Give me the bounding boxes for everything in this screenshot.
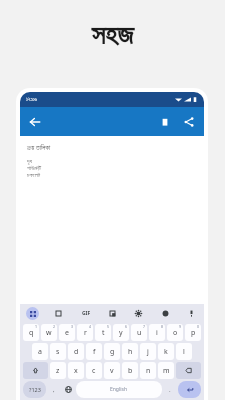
staticText: চকলেট: [27, 172, 41, 178]
button[interactable]: Delete: [152, 109, 178, 135]
button[interactable]: y: [113, 324, 129, 341]
staticText: e: [65, 328, 69, 338]
button[interactable]: Settings: [132, 307, 145, 320]
button[interactable]: Period: [163, 381, 177, 398]
button[interactable]: Share: [178, 109, 200, 135]
staticText: i: [156, 328, 158, 338]
button[interactable]: o: [167, 324, 183, 341]
staticText: সহজ: [91, 22, 134, 49]
staticText: s: [56, 347, 60, 357]
button[interactable]: s: [50, 343, 66, 360]
button[interactable]: r: [77, 324, 93, 341]
button[interactable]: a: [32, 343, 48, 360]
staticText: দুধ: [27, 158, 33, 164]
staticText: v: [110, 366, 114, 376]
button[interactable]: l: [176, 343, 192, 360]
staticText: l: [183, 347, 185, 357]
staticText: o: [173, 328, 178, 338]
staticText: z: [56, 366, 60, 376]
button[interactable]: f: [86, 343, 102, 360]
button[interactable]: GIF: [79, 307, 93, 320]
button[interactable]: u: [131, 324, 147, 341]
staticText: y: [119, 328, 123, 338]
staticText: c: [92, 366, 96, 376]
staticText: n: [146, 366, 151, 376]
staticText: f: [93, 347, 96, 357]
staticText: GIF: [82, 310, 91, 317]
button[interactable]: k: [158, 343, 174, 360]
staticText: j: [147, 347, 149, 357]
button[interactable]: Shift: [23, 362, 48, 379]
button[interactable]: Stickers: [52, 307, 65, 320]
staticText: r: [84, 328, 87, 338]
staticText: h: [128, 347, 133, 357]
button[interactable]: n: [140, 362, 156, 379]
staticText: a: [38, 347, 42, 357]
button[interactable]: z: [50, 362, 66, 379]
staticText: m: [163, 366, 170, 376]
button[interactable]: h: [122, 343, 138, 360]
staticText: x: [74, 366, 78, 376]
staticText: ?123: [29, 386, 41, 393]
button[interactable]: e: [59, 324, 75, 341]
button[interactable]: v: [104, 362, 120, 379]
button[interactable]: Clipboard: [106, 307, 119, 320]
staticText: g: [110, 347, 115, 357]
staticText: t: [102, 328, 105, 338]
button[interactable]: g: [104, 343, 120, 360]
button[interactable]: d: [68, 343, 84, 360]
staticText: ,: [53, 386, 55, 394]
staticText: 4: [89, 324, 92, 329]
button[interactable]: Backspace: [176, 362, 201, 379]
button[interactable]: Voice input: [185, 307, 198, 320]
staticText: 9: [179, 324, 182, 329]
staticText: q: [29, 328, 34, 338]
button[interactable]: English: [76, 381, 162, 398]
button[interactable]: t: [95, 324, 111, 341]
staticText: u: [137, 328, 142, 338]
staticText: 6: [125, 324, 128, 329]
button[interactable]: x: [68, 362, 84, 379]
staticText: English: [110, 386, 128, 393]
staticText: 7: [143, 324, 146, 329]
button[interactable]: Comma: [47, 381, 61, 398]
staticText: 0: [197, 324, 200, 329]
button[interactable]: Language: [61, 381, 75, 398]
button[interactable]: Back: [20, 107, 49, 136]
button[interactable]: ?123: [23, 381, 46, 398]
button[interactable]: m: [158, 362, 174, 379]
staticText: d: [74, 347, 79, 357]
button[interactable]: Menu: [26, 307, 39, 320]
button[interactable]: p: [185, 324, 201, 341]
button[interactable]: Themes: [159, 307, 172, 320]
staticText: 5: [107, 324, 110, 329]
button[interactable]: j: [140, 343, 156, 360]
staticText: 8: [161, 324, 164, 329]
staticText: w: [46, 328, 52, 338]
staticText: 2: [53, 324, 56, 329]
staticText: ১২:৩৬: [26, 96, 38, 103]
button[interactable]: Enter: [178, 381, 201, 398]
staticText: k: [164, 347, 168, 357]
button[interactable]: c: [86, 362, 102, 379]
button[interactable]: b: [122, 362, 138, 379]
staticText: p: [191, 328, 196, 338]
button[interactable]: i: [149, 324, 165, 341]
staticText: .: [169, 386, 171, 394]
staticText: ক্রয় তালিকা: [27, 143, 51, 152]
staticText: 1: [35, 324, 38, 329]
staticText: b: [128, 366, 133, 376]
staticText: পাউরুটি: [27, 165, 42, 171]
button[interactable]: w: [41, 324, 57, 341]
button[interactable]: q: [23, 324, 39, 341]
staticText: 3: [71, 324, 74, 329]
